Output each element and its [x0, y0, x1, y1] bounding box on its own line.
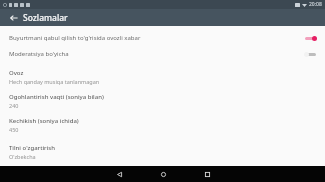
staticText: 20:08: [309, 1, 322, 8]
button[interactable]: Tilni o'zgartirish: [0, 140, 325, 164]
button[interactable]: Recent apps: [196, 166, 218, 182]
button[interactable]: Ovoz: [0, 65, 325, 89]
staticText: 240: [9, 102, 19, 109]
staticText: Sozlamalar: [23, 12, 68, 24]
button[interactable]: Back: [108, 166, 130, 182]
button[interactable]: Moderatsiya bo'yicha: [0, 46, 325, 62]
button[interactable]: Home: [152, 166, 174, 182]
staticText: O'zbekcha: [9, 153, 36, 160]
button[interactable]: Back: [8, 12, 20, 24]
staticText: 450: [9, 126, 19, 133]
button[interactable]: Ogohlantirish vaqti (soniya bilan): [0, 89, 325, 113]
staticText: Ogohlantirish vaqti (soniya bilan): [9, 93, 104, 101]
staticText: Hech qanday musiqa tanlanmagan: [9, 78, 100, 85]
button[interactable]: Kechikish (soniya ichida): [0, 113, 325, 137]
staticText: Moderatsiya bo'yicha: [9, 50, 298, 58]
staticText: Ovoz: [9, 69, 24, 77]
staticText: Tilni o'zgartirish: [9, 144, 55, 152]
staticText: Buyurtmani qabul qilish to'g'risida ovoz…: [9, 34, 298, 42]
staticText: Kechikish (soniya ichida): [9, 117, 79, 125]
button[interactable]: Buyurtmani qabul qilish to'g'risida ovoz…: [0, 30, 325, 46]
